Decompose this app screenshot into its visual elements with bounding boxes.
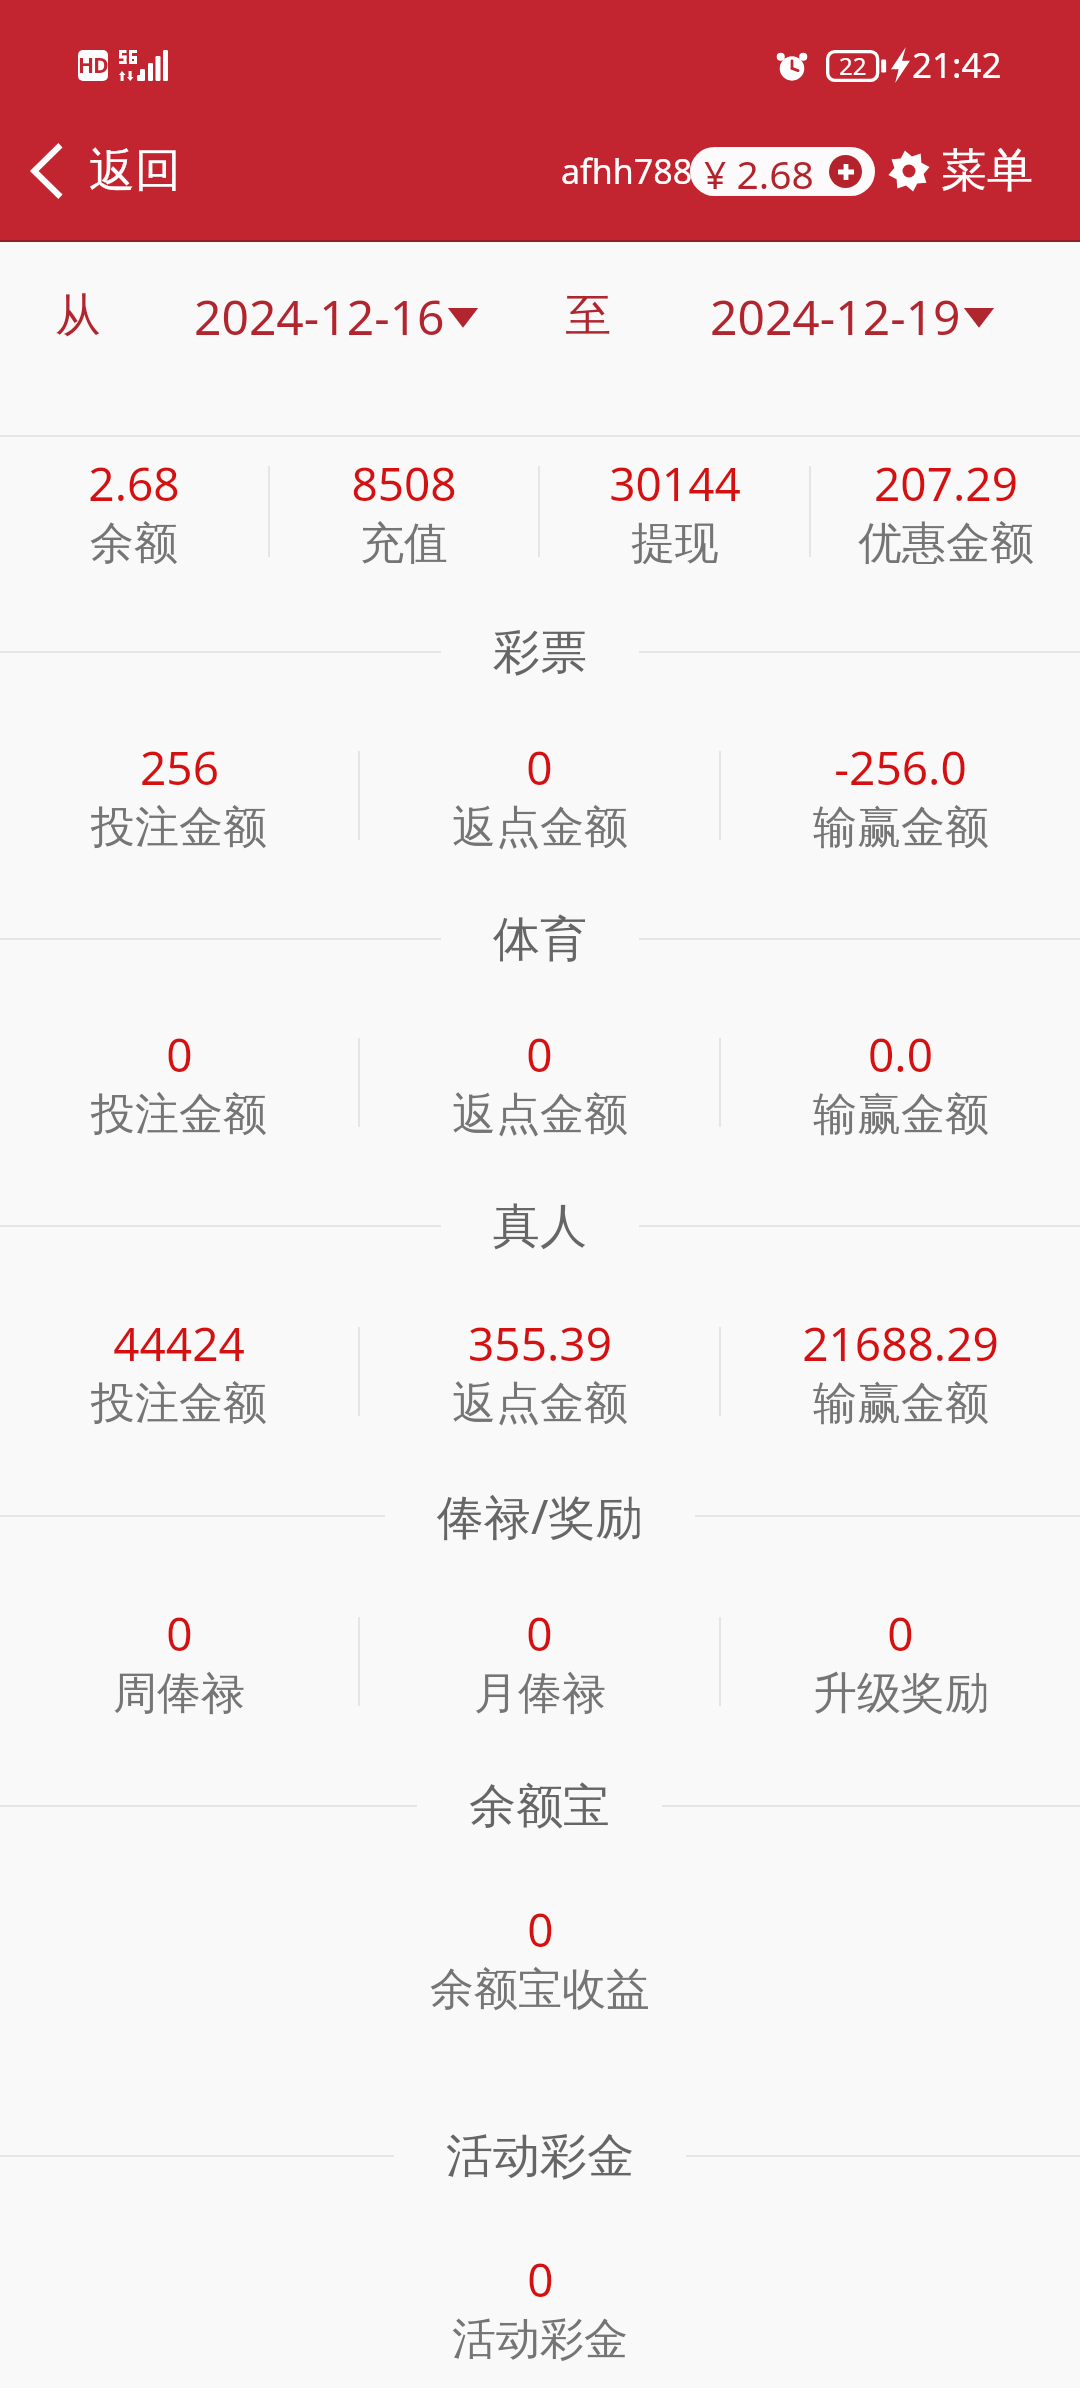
button[interactable]: 256	[0, 719, 358, 872]
staticText: 优惠金额	[858, 516, 1034, 571]
button[interactable]: 充值	[829, 155, 862, 188]
button[interactable]: 0	[721, 1583, 1080, 1739]
staticText: 355.39	[468, 1312, 612, 1375]
staticText: 21:42	[912, 41, 1002, 89]
button[interactable]: 8508	[270, 437, 538, 585]
staticText: 返点金额	[452, 1087, 628, 1142]
staticText: 21688.29	[802, 1312, 999, 1375]
staticText: 2.68	[88, 452, 180, 515]
staticText: 俸禄/奖励	[437, 1484, 643, 1548]
staticText: 投注金额	[91, 1087, 267, 1142]
staticText: 0	[527, 1898, 554, 1961]
staticText: 提现	[631, 516, 719, 571]
staticText: 44424	[113, 1312, 245, 1375]
staticText: 2024-12-19	[710, 284, 961, 349]
button[interactable]: 2.68	[0, 437, 268, 585]
button[interactable]: 0	[0, 1006, 358, 1159]
button[interactable]: 0	[0, 2223, 1080, 2388]
staticText: 0.0	[868, 1023, 933, 1086]
button[interactable]: 0	[360, 1006, 719, 1159]
button[interactable]: 21688.29	[721, 1293, 1080, 1449]
staticText: 至	[565, 287, 611, 345]
staticText: afhh788	[561, 148, 693, 194]
button[interactable]: 355.39	[360, 1293, 719, 1449]
button[interactable]: 207.29	[811, 437, 1080, 585]
staticText: 升级奖励	[813, 1666, 989, 1721]
staticText: 活动彩金	[446, 2127, 634, 2186]
staticText: 输赢金额	[813, 1087, 989, 1142]
staticText: 2024-12-16	[194, 284, 445, 349]
staticText: 返回	[89, 142, 181, 200]
staticText: 充值	[360, 516, 448, 571]
staticText: 投注金额	[91, 800, 267, 855]
staticText: 0	[526, 1602, 553, 1665]
staticText: 从	[55, 287, 101, 345]
staticText: 余额	[90, 516, 178, 571]
button[interactable]: 0	[360, 1583, 719, 1739]
staticText: 彩票	[493, 623, 587, 682]
staticText: 22	[839, 49, 867, 82]
staticText: HD	[78, 51, 108, 80]
staticText: 月俸禄	[474, 1666, 606, 1721]
button[interactable]: 0.0	[721, 1006, 1080, 1159]
staticText: 0	[526, 736, 553, 799]
staticText: 256	[140, 736, 219, 799]
button[interactable]: 2024-12-16	[194, 284, 481, 349]
staticText: 投注金额	[91, 1376, 267, 1431]
button[interactable]: 0	[0, 1583, 358, 1739]
staticText: 0	[166, 1602, 193, 1665]
staticText: 余额宝收益	[430, 1962, 650, 2017]
staticText: 周俸禄	[113, 1666, 245, 1721]
button[interactable]: 返回	[0, 100, 207, 242]
button[interactable]: 44424	[0, 1293, 358, 1449]
staticText: 0	[887, 1602, 914, 1665]
button[interactable]: 30144	[540, 437, 809, 585]
staticText: ¥ 2.68	[704, 147, 814, 196]
staticText: 0	[526, 1023, 553, 1086]
staticText: 0	[166, 1023, 193, 1086]
button[interactable]: 0	[0, 1873, 1080, 2089]
button[interactable]: ¥ 2.68	[690, 147, 875, 196]
button[interactable]: 0	[360, 719, 719, 872]
staticText: 返点金额	[452, 1376, 628, 1431]
staticText: 余额宝	[469, 1777, 610, 1836]
staticText: 8508	[351, 452, 457, 515]
staticText: 菜单	[941, 142, 1033, 200]
staticText: 0	[527, 2248, 554, 2311]
staticText: 活动彩金	[452, 2312, 628, 2367]
staticText: 30144	[609, 452, 741, 515]
staticText: 207.29	[874, 452, 1018, 515]
staticText: 返点金额	[452, 800, 628, 855]
staticText: 输赢金额	[813, 1376, 989, 1431]
staticText: 输赢金额	[813, 800, 989, 855]
staticText: 体育	[493, 910, 587, 969]
button[interactable]: 菜单	[888, 142, 1033, 200]
staticText: -256.0	[834, 736, 967, 799]
button[interactable]: 2024-12-19	[710, 284, 997, 349]
button[interactable]: -256.0	[721, 719, 1080, 872]
staticText: 真人	[493, 1197, 587, 1256]
